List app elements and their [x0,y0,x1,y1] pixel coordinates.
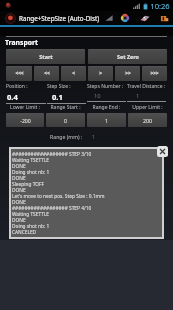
button[interactable]: <<< [6,66,32,81]
staticText: -200 [20,117,31,124]
button[interactable]: 0 [46,113,85,127]
staticText: Range Start : [46,104,85,111]
staticText: Lower Limit : [6,104,44,111]
button[interactable]: < [61,66,86,81]
staticText: 1 [92,133,95,140]
staticText: Doing shot nb: 1 [12,169,50,175]
staticText: Sleeping TOFF [12,181,44,187]
staticText: 0 [64,117,67,124]
staticText: Steps Number : [87,83,124,90]
staticText: > [99,70,102,77]
staticText: Upper Limit : [128,104,167,111]
button[interactable]: -200 [6,113,44,127]
button[interactable]: >>> [142,66,167,81]
staticText: 0.4 [7,92,18,102]
staticText: Doing shot nb: 1 [12,223,50,229]
staticText: CANCELED [12,229,37,235]
staticText: Transport [5,38,38,47]
staticText: ################## STEP 3/10 [12,151,92,157]
staticText: 1 [105,117,108,124]
staticText: Position : [6,83,28,90]
staticText: >>> [150,70,159,77]
staticText: DONE [12,187,26,193]
staticText: 0.1 [52,92,63,102]
staticText: DONE [12,199,26,205]
button[interactable]: Palette [139,11,151,25]
button[interactable]: >> [115,66,140,81]
button[interactable]: 1 [87,113,126,127]
staticText: 1 [136,92,140,100]
staticText: DONE [12,217,26,223]
button[interactable]: << [34,66,59,81]
staticText: Waiting TSETTLE [12,211,50,217]
staticText: Range End : [87,104,126,111]
button[interactable]: Start [6,49,85,64]
staticText: Range (mm) : [50,133,83,140]
button[interactable]: Close [157,146,168,157]
staticText: << [44,70,50,77]
staticText: Range+StepSize (Auto-Dist) [19,14,100,23]
button[interactable]: Color wheel [119,11,130,25]
staticText: 10:26 [150,1,170,11]
staticText: 200 [143,117,152,124]
button[interactable]: Set Zero [88,49,167,64]
staticText: Start [39,53,53,60]
button[interactable]: 200 [128,113,167,127]
staticText: Travel Distance : [127,83,166,90]
button[interactable]: Open file [158,11,170,25]
staticText: Let's move to next pos. Step Size : 0.1m… [12,193,105,199]
staticText: 10 [94,92,101,100]
staticText: ################## STEP 4/10 [12,205,92,211]
staticText: Set Zero [117,53,139,60]
staticText: DONE [12,175,26,181]
staticText: < [72,70,75,77]
staticText: >> [125,70,131,77]
staticText: Waiting TSETTLE [12,157,50,163]
staticText: Step Size : [47,83,71,90]
staticText: <<< [15,70,24,77]
button[interactable]: > [88,66,113,81]
staticText: DONE [12,163,26,169]
